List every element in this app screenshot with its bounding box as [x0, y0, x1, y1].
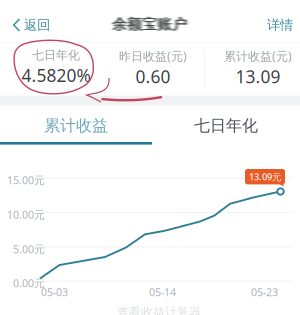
staticText: 15.00元 — [7, 173, 45, 187]
staticText: 0.00元 — [13, 276, 45, 290]
button[interactable]: 累计收益 — [0, 106, 152, 146]
staticText: 余额宝账户 — [111, 15, 186, 33]
staticText: 七日年化 — [194, 116, 258, 135]
staticText: 13.09 — [235, 65, 280, 88]
staticText: 05-23 — [251, 285, 278, 299]
staticText: 4.5820% — [21, 64, 90, 87]
staticText: 0.60 — [135, 65, 170, 88]
button[interactable]: 七日年化 — [152, 106, 300, 146]
staticText: 余额宝账户 — [113, 15, 188, 33]
staticText: 七日年化 — [32, 48, 80, 63]
staticText: 详情 — [267, 17, 293, 33]
staticText: 13.09元 — [249, 170, 281, 183]
staticText: 余额宝账户 — [115, 15, 190, 33]
button[interactable]: 返回 — [0, 3, 60, 39]
button[interactable]: 详情 — [257, 3, 300, 39]
staticText: 05-03 — [41, 285, 68, 299]
staticText: 余额宝账户 — [112, 15, 187, 33]
staticText: 余额宝账户 — [114, 15, 189, 33]
staticText: 累计收益 — [44, 116, 108, 135]
staticText: 余额宝账户 — [112, 15, 187, 33]
staticText: 10.00元 — [7, 207, 45, 222]
staticText: 余额宝账户 — [110, 15, 185, 33]
staticText: 昨日收益(元) — [119, 48, 187, 64]
staticText: 累计收益(元) — [224, 48, 292, 64]
staticText: 5.00元 — [13, 242, 45, 256]
staticText: 查看收益计算器 — [117, 305, 201, 315]
staticText: 05-14 — [149, 285, 176, 299]
staticText: 返回 — [24, 17, 50, 33]
